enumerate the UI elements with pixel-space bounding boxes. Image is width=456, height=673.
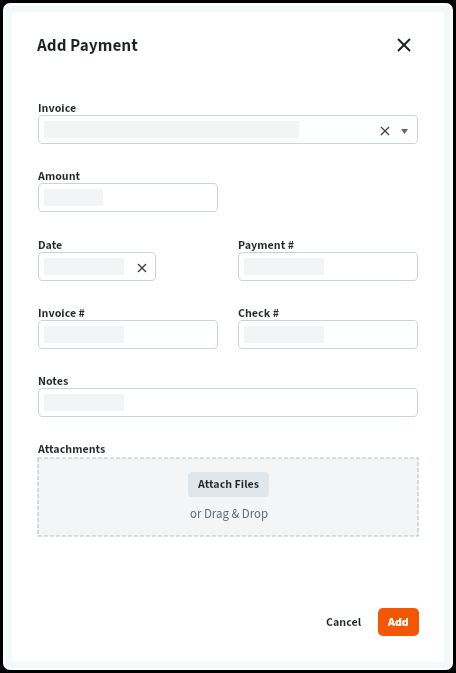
staticText: Add (388, 614, 409, 631)
staticText: Check # (238, 305, 279, 322)
staticText: Invoice (38, 100, 77, 117)
button[interactable]: Add (378, 608, 419, 636)
staticText: Payment # (238, 237, 295, 254)
staticText: Amount (38, 168, 81, 185)
staticText: Notes (38, 373, 69, 390)
button[interactable] (38, 388, 418, 417)
staticText: Attach Files (198, 476, 260, 493)
button[interactable] (38, 320, 218, 349)
staticText: Cancel (326, 614, 362, 631)
button[interactable] (38, 183, 218, 212)
button[interactable] (238, 320, 418, 349)
button[interactable] (38, 252, 156, 281)
staticText: Add Payment (37, 33, 138, 57)
staticText: or Drag & Drop (190, 505, 268, 523)
staticText: Date (38, 237, 63, 254)
button[interactable]: Close (391, 32, 417, 58)
staticText: Attachments (38, 441, 106, 458)
button[interactable]: Cancel (316, 608, 372, 636)
button[interactable] (38, 115, 418, 144)
staticText: Invoice # (38, 305, 85, 322)
button[interactable]: Attach Files (38, 458, 418, 536)
button[interactable] (238, 252, 418, 281)
button[interactable]: Attach Files (188, 472, 269, 497)
